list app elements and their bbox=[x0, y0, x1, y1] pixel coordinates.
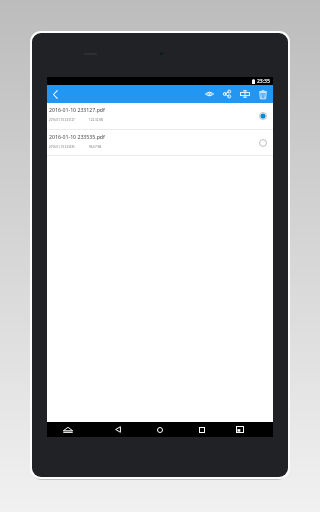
button[interactable]: Selected bbox=[255, 103, 273, 129]
staticText: 2016-01-10 233127.pdf bbox=[49, 106, 105, 113]
button[interactable]: Back bbox=[107, 422, 129, 437]
staticText: 2016-01-10 233127 bbox=[49, 118, 75, 122]
button[interactable]: 2016-01-10 233535.pdf bbox=[47, 130, 273, 155]
staticText: 96.67 KB bbox=[89, 145, 102, 149]
button[interactable]: Back bbox=[47, 85, 63, 103]
button[interactable]: Home bbox=[149, 422, 171, 437]
button[interactable]: Recents bbox=[191, 422, 213, 437]
staticText: 2016-01-10 233535 bbox=[49, 145, 75, 149]
button[interactable]: Share bbox=[218, 85, 236, 103]
button[interactable]: 2016-01-10 233127.pdf bbox=[47, 103, 273, 129]
button[interactable]: Screenshot bbox=[229, 422, 251, 437]
button[interactable]: Preview bbox=[200, 85, 218, 103]
staticText: 23:35 bbox=[257, 78, 270, 85]
staticText: 122.32 KB bbox=[89, 118, 103, 122]
button[interactable]: Eject bbox=[57, 422, 79, 437]
button[interactable]: Select bbox=[255, 130, 273, 155]
button[interactable]: Delete bbox=[254, 85, 272, 103]
staticText: 2016-01-10 233535.pdf bbox=[49, 133, 105, 140]
button[interactable]: Split bbox=[236, 85, 254, 103]
